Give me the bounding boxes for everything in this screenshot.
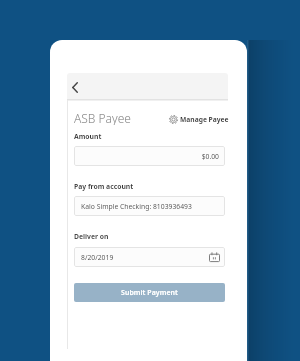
staticText: Pay from account [74,182,134,191]
button[interactable]: Submit Payment [74,283,225,302]
button[interactable]: ASB Payee [74,110,131,125]
button[interactable]: $0.00 [74,146,225,166]
staticText: Deliver on [74,232,109,241]
staticText: Manage Payee [180,115,229,124]
staticText: Kalo Simple Checking: 8103936493 [81,202,192,211]
other: Pick date [209,252,220,263]
staticText: $0.00 [74,152,219,161]
staticText: ASB Payee [74,110,131,125]
staticText: Submit Payment [121,288,178,297]
button[interactable]: 8/20/2019 [74,247,225,267]
button[interactable]: Kalo Simple Checking: 8103936493 [74,196,225,216]
button[interactable]: Back [67,73,85,100]
staticText: Amount [74,132,102,141]
staticText: 8/20/2019 [81,253,114,262]
button[interactable]: Manage Payee [169,113,229,125]
